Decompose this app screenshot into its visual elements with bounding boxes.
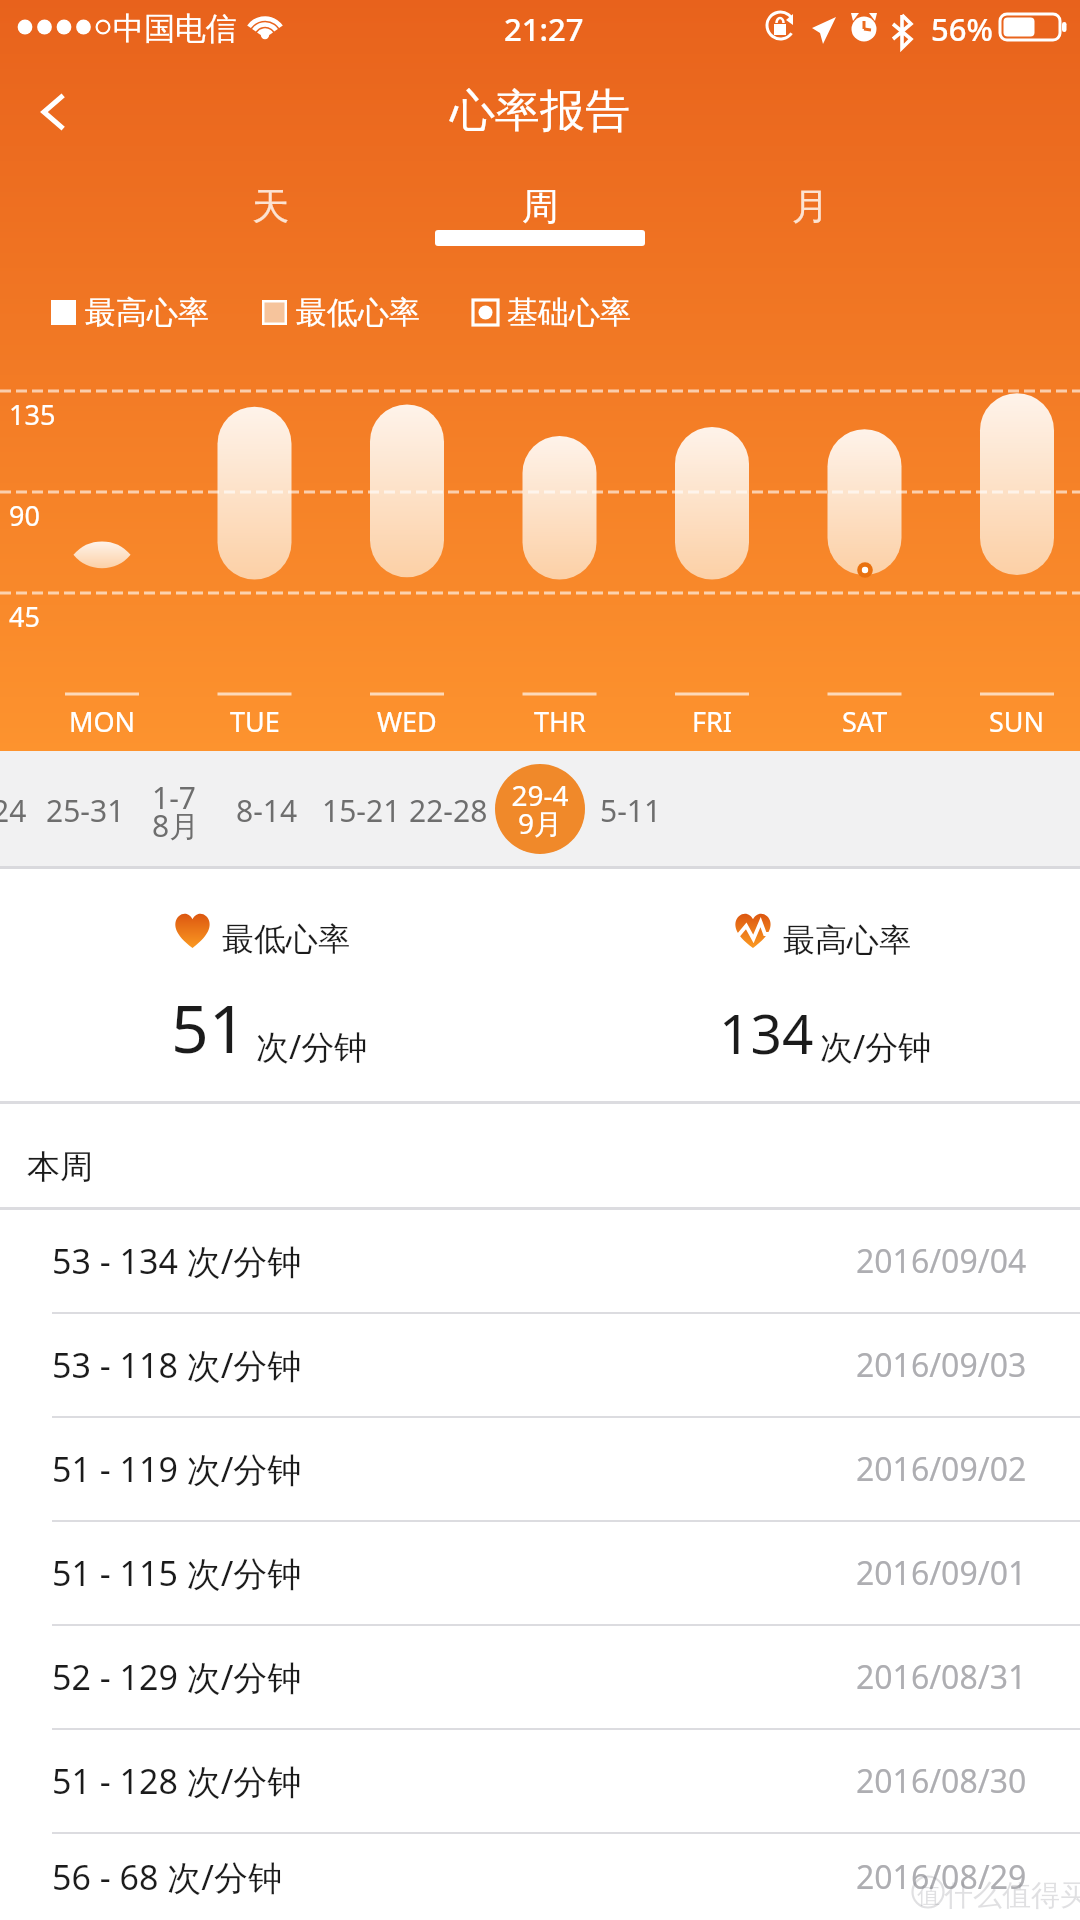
staticText: 周: [522, 183, 559, 230]
staticText: 2016/08/29: [856, 1855, 1027, 1899]
button[interactable]: 8-14: [236, 790, 298, 831]
staticText: 53 - 118 次/分钟: [52, 1342, 302, 1388]
staticText: 最高心率: [783, 920, 911, 960]
button[interactable]: 月: [675, 166, 945, 256]
staticText: 135: [9, 396, 56, 433]
staticText: 最高心率: [85, 293, 209, 332]
staticText: 51 - 115 次/分钟: [52, 1550, 302, 1596]
staticText: 次/分钟: [256, 1024, 368, 1069]
button[interactable]: 53 - 118 次/分钟: [0, 1314, 1080, 1416]
staticText: 中国电信: [113, 9, 237, 48]
staticText: 最低心率: [222, 919, 350, 959]
staticText: 什么值得买: [944, 1877, 1080, 1914]
staticText: 51 - 119 次/分钟: [52, 1446, 302, 1492]
button[interactable]: 52 - 129 次/分钟: [0, 1626, 1080, 1728]
staticText: 134: [719, 995, 814, 1070]
staticText: WED: [377, 703, 437, 740]
staticText: 2016/09/04: [856, 1239, 1027, 1283]
staticText: 天: [252, 183, 289, 230]
staticText: SUN: [989, 703, 1045, 740]
staticText: 45: [9, 598, 40, 635]
staticText: 51: [171, 982, 247, 1072]
button[interactable]: 53 - 134 次/分钟: [0, 1210, 1080, 1312]
staticText: 52 - 129 次/分钟: [52, 1654, 302, 1700]
button[interactable]: 51 - 128 次/分钟: [0, 1730, 1080, 1832]
staticText: 2016/09/01: [856, 1551, 1027, 1595]
button[interactable]: 25-31: [46, 790, 125, 831]
staticText: 56 - 68 次/分钟: [52, 1854, 282, 1900]
staticText: MON: [69, 703, 136, 740]
staticText: 2016/08/31: [856, 1655, 1027, 1699]
staticText: 8月: [152, 805, 200, 846]
staticText: TUE: [230, 703, 280, 740]
staticText: 29-4: [495, 776, 585, 814]
button[interactable]: 天: [135, 166, 405, 256]
button[interactable]: 周: [405, 166, 675, 256]
staticText: 2016/09/02: [856, 1447, 1027, 1491]
staticText: 53 - 134 次/分钟: [52, 1238, 302, 1284]
staticText: THR: [534, 703, 586, 740]
staticText: 51 - 128 次/分钟: [52, 1758, 302, 1804]
staticText: 2016/09/03: [856, 1343, 1027, 1387]
staticText: SAT: [842, 703, 888, 740]
button[interactable]: [0, 869, 540, 1101]
button[interactable]: 15-21: [322, 790, 401, 831]
staticText: 基础心率: [507, 293, 631, 332]
button[interactable]: 56 - 68 次/分钟: [0, 1834, 1080, 1920]
button[interactable]: Back: [0, 58, 108, 166]
button[interactable]: 51 - 119 次/分钟: [0, 1418, 1080, 1520]
button[interactable]: [540, 869, 1080, 1101]
staticText: 次/分钟: [820, 1024, 932, 1069]
staticText: 心率报告: [0, 83, 1080, 140]
button[interactable]: 51 - 115 次/分钟: [0, 1522, 1080, 1624]
staticText: 9月: [495, 804, 585, 842]
staticText: FRI: [692, 703, 732, 740]
staticText: 1-7: [152, 777, 196, 818]
button[interactable]: 22-28: [409, 790, 488, 831]
staticText: 21:27: [504, 8, 584, 50]
button[interactable]: 1-7: [152, 771, 212, 851]
staticText: 最低心率: [296, 293, 420, 332]
staticText: 月: [792, 183, 829, 230]
button[interactable]: 24: [0, 790, 27, 831]
button[interactable]: 29-4: [495, 764, 585, 854]
staticText: 本周: [27, 1146, 93, 1188]
button[interactable]: 5-11: [600, 790, 662, 831]
staticText: 56%: [931, 8, 993, 50]
staticText: 2016/08/30: [856, 1759, 1027, 1803]
staticText: 值: [917, 1881, 940, 1910]
staticText: 90: [9, 497, 40, 534]
